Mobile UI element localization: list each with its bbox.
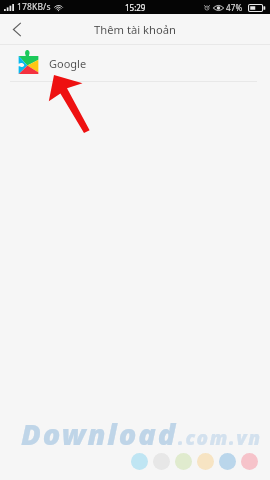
staticText: 47% <box>226 2 243 13</box>
staticText: Google <box>49 56 87 71</box>
button[interactable]: Google <box>0 45 270 81</box>
staticText: .com.vn <box>178 425 262 451</box>
staticText: Download <box>21 414 178 453</box>
staticText: 15:29 <box>125 2 146 13</box>
staticText: 178KB/s <box>17 1 51 13</box>
button[interactable]: Back <box>0 14 34 45</box>
staticText: Thêm tài khoản <box>94 22 176 37</box>
